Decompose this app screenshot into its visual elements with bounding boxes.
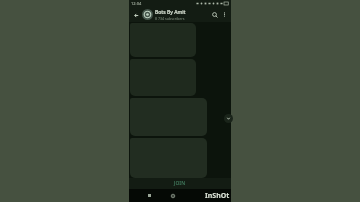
button[interactable]: Recents [145, 191, 154, 200]
button[interactable]: Bots By Amit [155, 9, 210, 21]
button[interactable]: Search [210, 10, 220, 20]
button[interactable]: Home [168, 191, 177, 200]
staticText: Bots By Amit [155, 9, 186, 16]
button[interactable]: More options [220, 10, 229, 19]
staticText: JOIN [174, 180, 186, 187]
staticText: 12:04 [131, 1, 142, 6]
button[interactable]: Channel avatar [142, 9, 153, 20]
staticText: 8 734 subscribers [155, 16, 185, 21]
staticText: InShOt [205, 191, 230, 201]
button[interactable]: Scroll to bottom [224, 114, 233, 123]
button[interactable]: Back [131, 10, 141, 20]
button[interactable]: JOIN [129, 178, 231, 189]
